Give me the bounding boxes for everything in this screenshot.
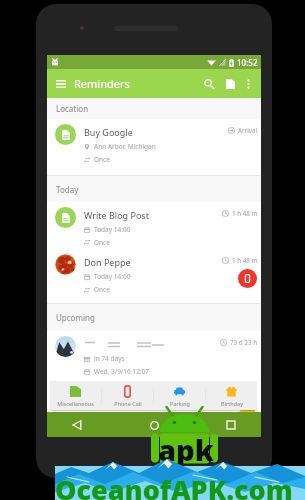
button[interactable]: Birthday — [206, 381, 257, 410]
button[interactable]: Miscellaneous — [50, 381, 101, 410]
staticText: Birthday — [221, 400, 243, 407]
staticText: Reminders — [74, 76, 130, 91]
staticText: 1 h 48 m — [232, 256, 258, 265]
button[interactable]: Navigation menu — [52, 75, 70, 93]
button[interactable]: Write Blog Post — [47, 202, 261, 249]
staticText: apk — [158, 430, 214, 469]
staticText: Location — [56, 103, 89, 114]
button[interactable]: Home — [144, 415, 164, 435]
staticText: Buy Google — [84, 126, 133, 138]
staticText: Upcoming — [56, 312, 95, 323]
button[interactable]: Buy Google — [47, 119, 261, 175]
staticText: Today 14:00 — [94, 272, 131, 281]
staticText: OceanofAPK.com — [55, 471, 293, 500]
button[interactable]: Phone Call — [102, 381, 153, 410]
button[interactable]: in 74 days — [47, 331, 261, 427]
button[interactable]: Recent apps — [221, 415, 241, 435]
staticText: Once — [94, 238, 110, 247]
button[interactable]: Call — [238, 269, 257, 288]
staticText: Miscellaneous — [57, 400, 94, 407]
staticText: Parking — [170, 400, 190, 407]
staticText: 1 h 48 m — [232, 209, 258, 218]
staticText: Once — [94, 285, 110, 294]
button[interactable]: Storage — [221, 75, 239, 93]
staticText: Ann Arbor, Michigan — [94, 142, 156, 151]
staticText: in 74 days — [94, 354, 125, 363]
staticText: Write Blog Post — [84, 209, 149, 221]
button[interactable]: Birthday — [238, 407, 257, 426]
staticText: 73 d 23 h — [230, 338, 258, 347]
staticText: Today — [56, 184, 79, 195]
staticText: Arrival — [238, 126, 258, 135]
button[interactable]: Search — [200, 75, 218, 93]
staticText: Don Peppe — [84, 256, 131, 268]
staticText: Once — [94, 155, 110, 164]
button[interactable]: Don Peppe — [47, 249, 261, 303]
staticText: Wed, 3/9/16 12:07 — [94, 367, 150, 376]
button[interactable]: More options — [239, 75, 257, 93]
button[interactable]: Back — [67, 415, 87, 435]
staticText: Today 14:00 — [94, 225, 131, 234]
staticText: 10:52 — [237, 57, 258, 68]
button[interactable]: Parking — [154, 381, 205, 410]
staticText: Phone Call — [114, 400, 142, 407]
